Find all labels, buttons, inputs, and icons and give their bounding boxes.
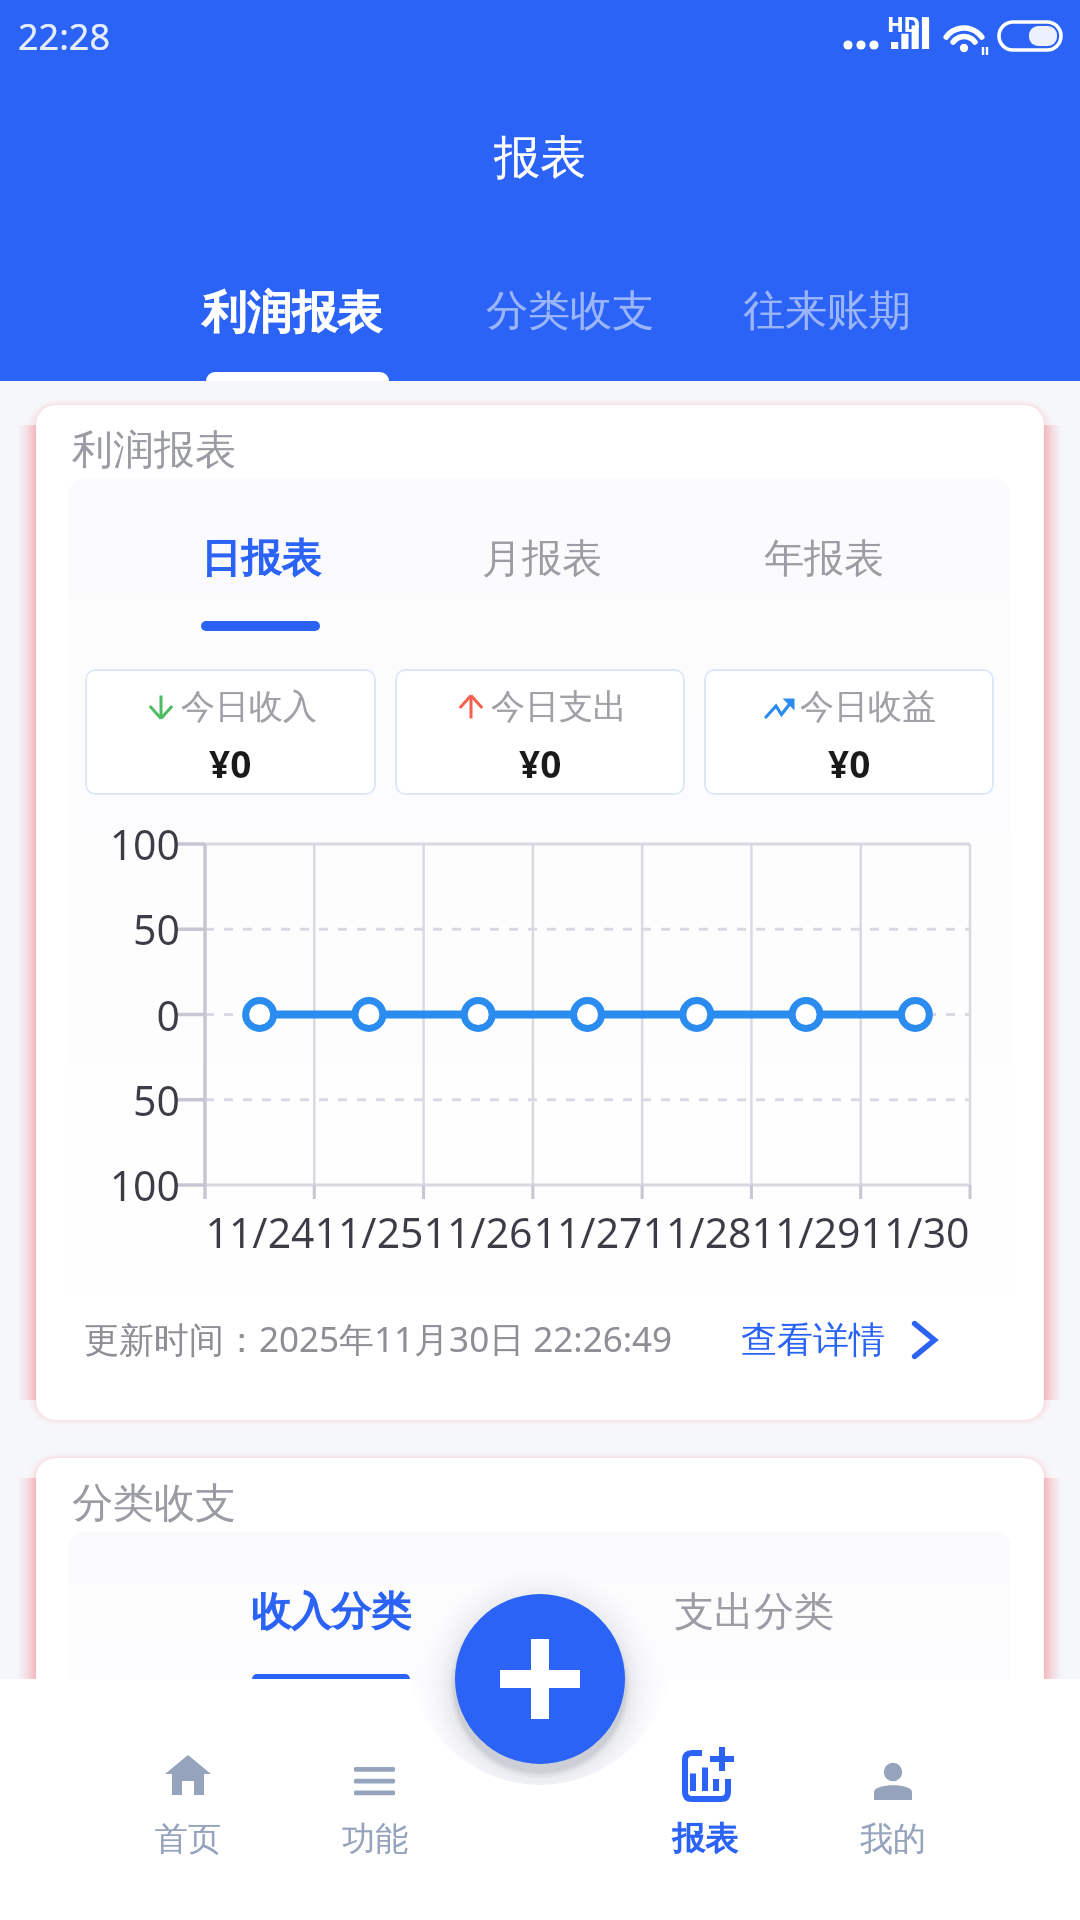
staticText: 11/29 (686, 1204, 926, 1260)
staticText: 利润报表 (202, 285, 382, 342)
staticText: 11/24 (140, 1204, 380, 1260)
button[interactable]: 今日收益 (704, 669, 994, 795)
staticText: 报表 (494, 129, 586, 187)
staticText: HD (887, 8, 920, 38)
staticText: 11/28 (577, 1204, 817, 1260)
staticText: 收入分类 (251, 1586, 411, 1636)
button[interactable]: 功能 (297, 1750, 453, 1860)
staticText: 今日收益 (800, 685, 936, 728)
staticText: 50 (68, 901, 180, 957)
staticText: 11/25 (249, 1204, 489, 1260)
staticText: 100 (68, 816, 180, 872)
staticText: 往来账期 (743, 285, 911, 338)
staticText: 月报表 (482, 533, 602, 583)
button[interactable]: Add (455, 1594, 625, 1764)
staticText: 分类收支 (72, 1478, 236, 1530)
staticText: 今日收入 (181, 685, 317, 728)
button[interactable]: 支出分类 (542, 1586, 965, 1674)
staticText: 利润报表 (72, 425, 236, 477)
staticText: 0 (68, 987, 180, 1043)
button[interactable]: 收入分类 (120, 1586, 542, 1684)
staticText: 功能 (342, 1818, 408, 1860)
staticText: 今日支出 (491, 685, 627, 728)
staticText: 更新时间：2025年11月30日 22:26:49 (84, 1315, 673, 1363)
staticText: 查看详情 (741, 1317, 885, 1362)
button[interactable]: 日报表 (120, 533, 401, 631)
staticText: 11/27 (468, 1204, 708, 1260)
staticText: 我的 (860, 1818, 926, 1860)
button[interactable]: 月报表 (401, 533, 683, 621)
button[interactable]: 首页 (110, 1750, 266, 1860)
staticText: 11/30 (795, 1204, 1011, 1260)
staticText: 100 (68, 1157, 180, 1213)
button[interactable]: 年报表 (683, 533, 965, 621)
button[interactable]: 今日支出 (395, 669, 685, 795)
button[interactable]: 查看详情 (741, 1317, 937, 1362)
staticText: ¥0 (828, 738, 871, 788)
staticText: 报表 (672, 1818, 738, 1860)
staticText: 日报表 (201, 533, 321, 583)
staticText: 首页 (155, 1818, 221, 1860)
staticText: 22:28 (18, 12, 111, 61)
staticText: 50 (68, 1072, 180, 1128)
staticText: 分类收支 (486, 285, 654, 338)
staticText: 支出分类 (674, 1586, 834, 1636)
staticText: ¥0 (209, 738, 252, 788)
staticText: ¥0 (519, 738, 562, 788)
button[interactable]: 报表 (627, 1750, 783, 1860)
staticText: 11/26 (358, 1204, 598, 1260)
staticText: 年报表 (764, 533, 884, 583)
button[interactable]: 我的 (815, 1750, 971, 1860)
button[interactable]: 今日收入 (85, 669, 376, 795)
